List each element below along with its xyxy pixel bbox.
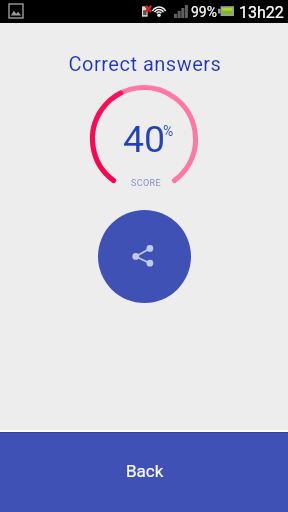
staticText: SCORE xyxy=(92,178,200,189)
staticText: 40 xyxy=(123,117,166,161)
staticText: 13h22 xyxy=(239,3,284,22)
button[interactable]: Back xyxy=(0,433,288,512)
staticText: % xyxy=(163,123,174,139)
staticText: Correct answers xyxy=(1,52,288,75)
button[interactable]: Share xyxy=(98,210,191,303)
staticText: 99% xyxy=(191,4,217,20)
staticText: Back xyxy=(126,461,164,481)
